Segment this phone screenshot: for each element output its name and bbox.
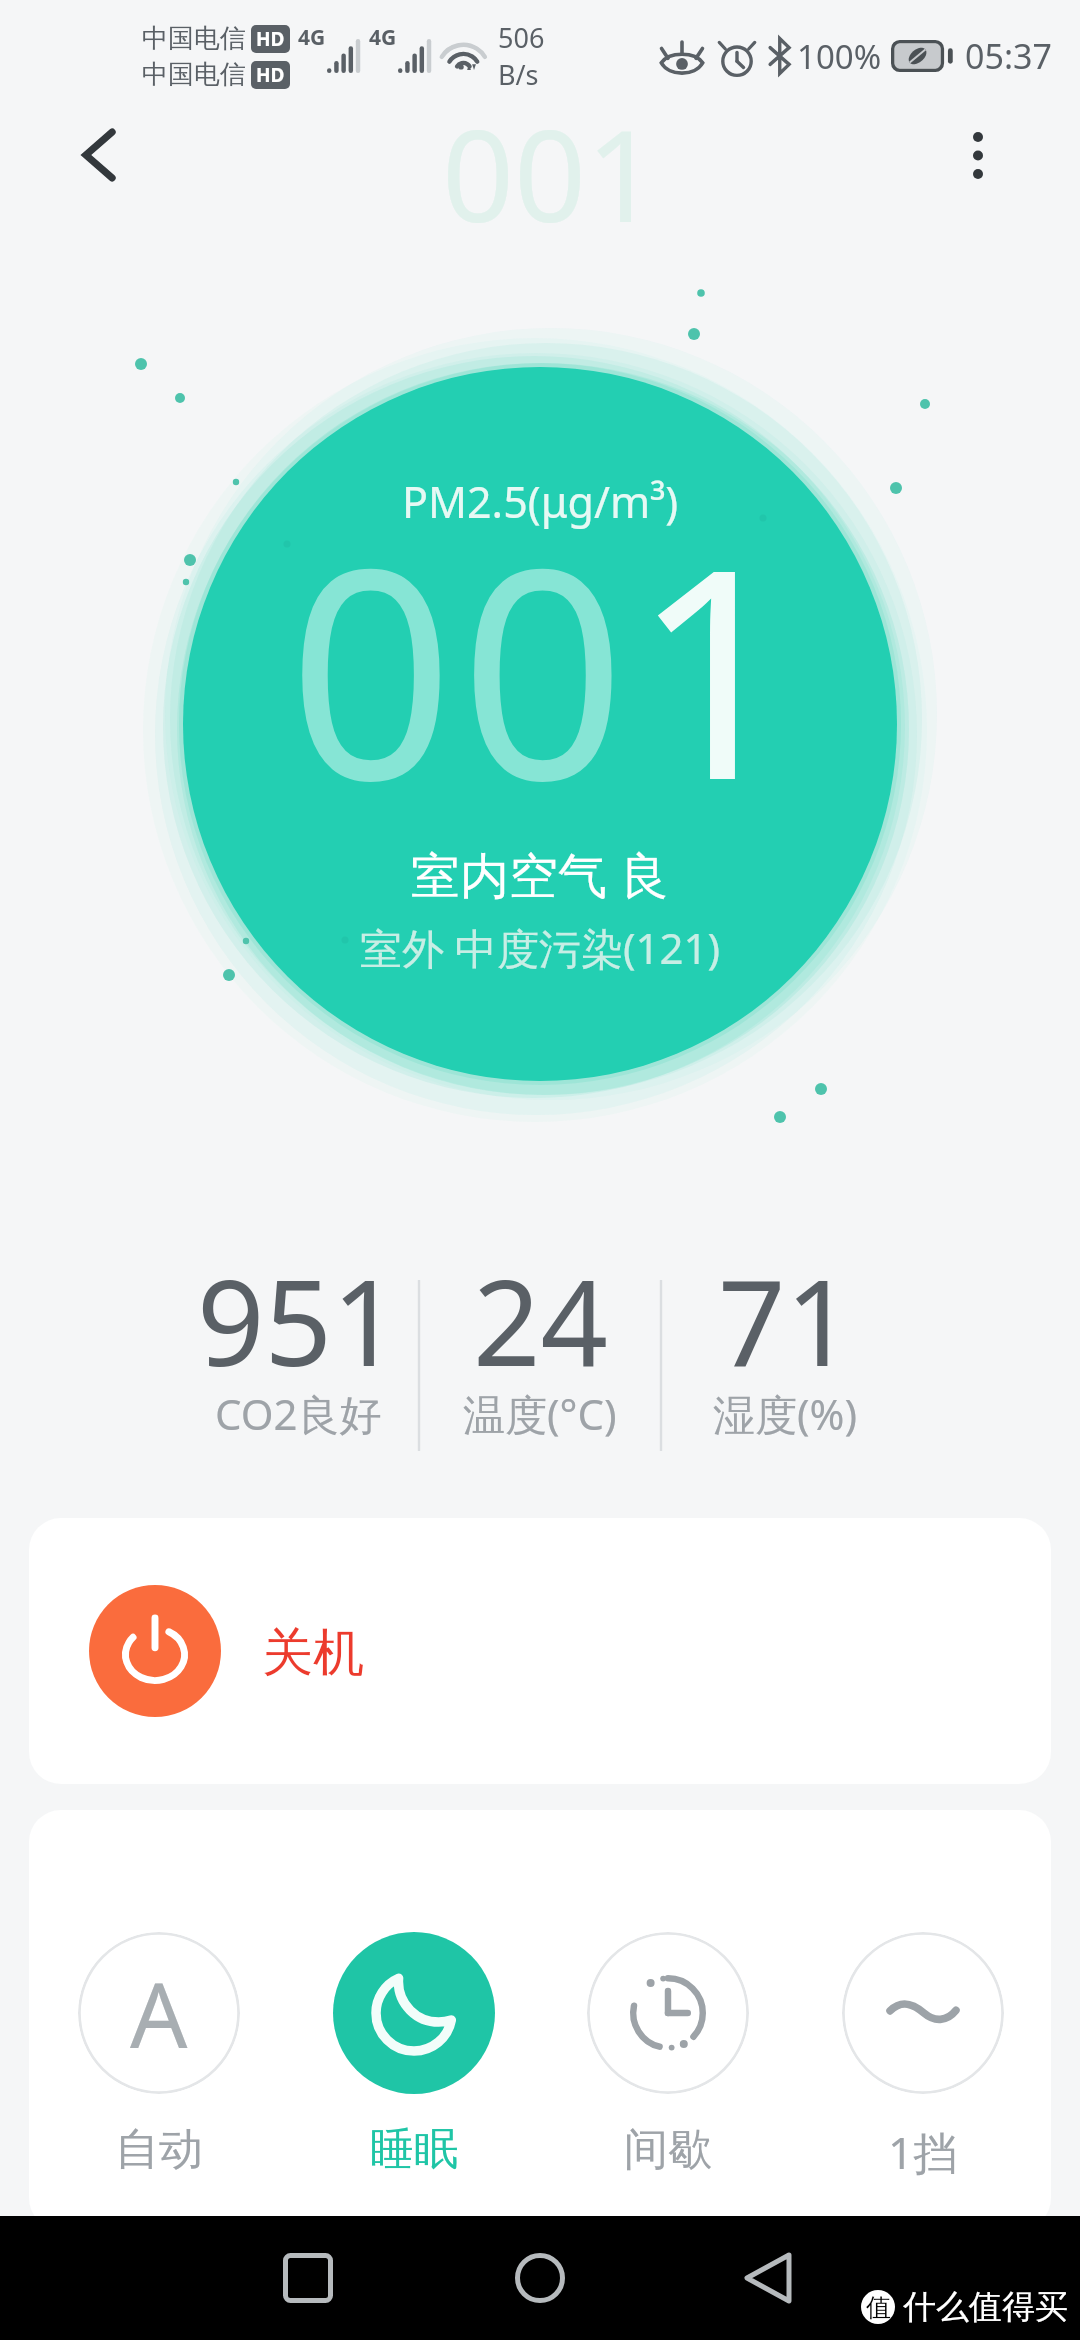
staticText: PM2.5(μg/m³) [402, 472, 679, 531]
button[interactable]: A [44, 1932, 274, 2177]
button[interactable]: 睡眠 [299, 1932, 529, 2177]
staticText: 05:37 [965, 33, 1052, 79]
staticText: 00 [288, 469, 632, 864]
staticText: 4G [298, 23, 326, 52]
button[interactable]: 间歇 [553, 1932, 783, 2177]
button[interactable]: 关机 [29, 1518, 1051, 1784]
staticText: HD [256, 62, 285, 88]
staticText: 睡眠 [370, 2122, 458, 2177]
staticText: 温度(°C) [463, 1385, 617, 1442]
staticText: 100% [797, 34, 882, 79]
staticText: CO2良好 [215, 1385, 382, 1442]
staticText: 值 [866, 2292, 891, 2323]
staticText: 关机 [262, 1621, 364, 1685]
button[interactable]: 1挡 [808, 1932, 1038, 2182]
staticText: 室外 中度污染(121) [360, 919, 721, 976]
staticText: 中国电信 [142, 58, 246, 91]
staticText: 室内空气 良 [411, 841, 669, 908]
staticText: 24 [473, 1240, 608, 1401]
staticText: 4G [369, 23, 397, 52]
staticText: 什么值得买 [903, 2286, 1068, 2328]
staticText: 湿度(%) [713, 1385, 858, 1442]
button[interactable]: Back [58, 114, 140, 196]
staticText: A [130, 1952, 188, 2075]
staticText: B/s [498, 56, 539, 93]
staticText: 506 [498, 19, 545, 56]
staticText: 1 [632, 469, 798, 864]
staticText: HD [256, 26, 285, 52]
button[interactable]: Home [490, 2228, 590, 2328]
button[interactable]: Back [718, 2228, 818, 2328]
staticText: 中国电信 [142, 22, 246, 55]
staticText: 951 [197, 1240, 400, 1401]
staticText: 自动 [115, 2122, 203, 2177]
button[interactable]: More options [937, 114, 1019, 196]
staticText: 1挡 [888, 2122, 958, 2182]
staticText: 间歇 [624, 2122, 712, 2177]
staticText: 71 [718, 1240, 853, 1401]
staticText: 001 [442, 87, 659, 259]
button[interactable]: Recents [258, 2228, 358, 2328]
